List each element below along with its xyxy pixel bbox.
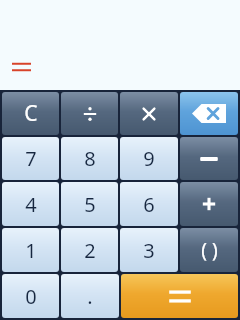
button[interactable]: Equals: [121, 274, 238, 318]
staticText: 6: [143, 191, 155, 218]
button[interactable]: 8: [61, 137, 118, 180]
staticText: 8: [84, 145, 96, 172]
button[interactable]: Backspace: [180, 92, 238, 135]
staticText: 2: [84, 237, 96, 264]
staticText: 4: [25, 191, 37, 218]
staticText: 9: [143, 145, 155, 172]
staticText: 7: [25, 145, 37, 172]
button[interactable]: 4: [2, 182, 59, 226]
staticText: 3: [143, 237, 155, 264]
button[interactable]: ( ): [180, 228, 238, 272]
button[interactable]: 1: [2, 228, 59, 272]
staticText: C: [24, 99, 38, 128]
staticText: .: [87, 283, 93, 310]
button[interactable]: C: [2, 92, 59, 135]
button[interactable]: 3: [120, 228, 178, 272]
button[interactable]: Minus: [180, 137, 238, 180]
staticText: 0: [25, 283, 37, 310]
button[interactable]: Multiply: [120, 92, 178, 135]
button[interactable]: Divide: [61, 92, 118, 135]
button[interactable]: .: [61, 274, 119, 318]
button[interactable]: Plus: [180, 182, 238, 226]
staticText: 1: [25, 237, 37, 264]
button[interactable]: 9: [120, 137, 178, 180]
button[interactable]: 0: [2, 274, 59, 318]
staticText: ( ): [201, 237, 218, 263]
button[interactable]: 2: [61, 228, 118, 272]
staticText: 5: [84, 191, 96, 218]
button[interactable]: 6: [120, 182, 178, 226]
button[interactable]: 5: [61, 182, 118, 226]
button[interactable]: 7: [2, 137, 59, 180]
